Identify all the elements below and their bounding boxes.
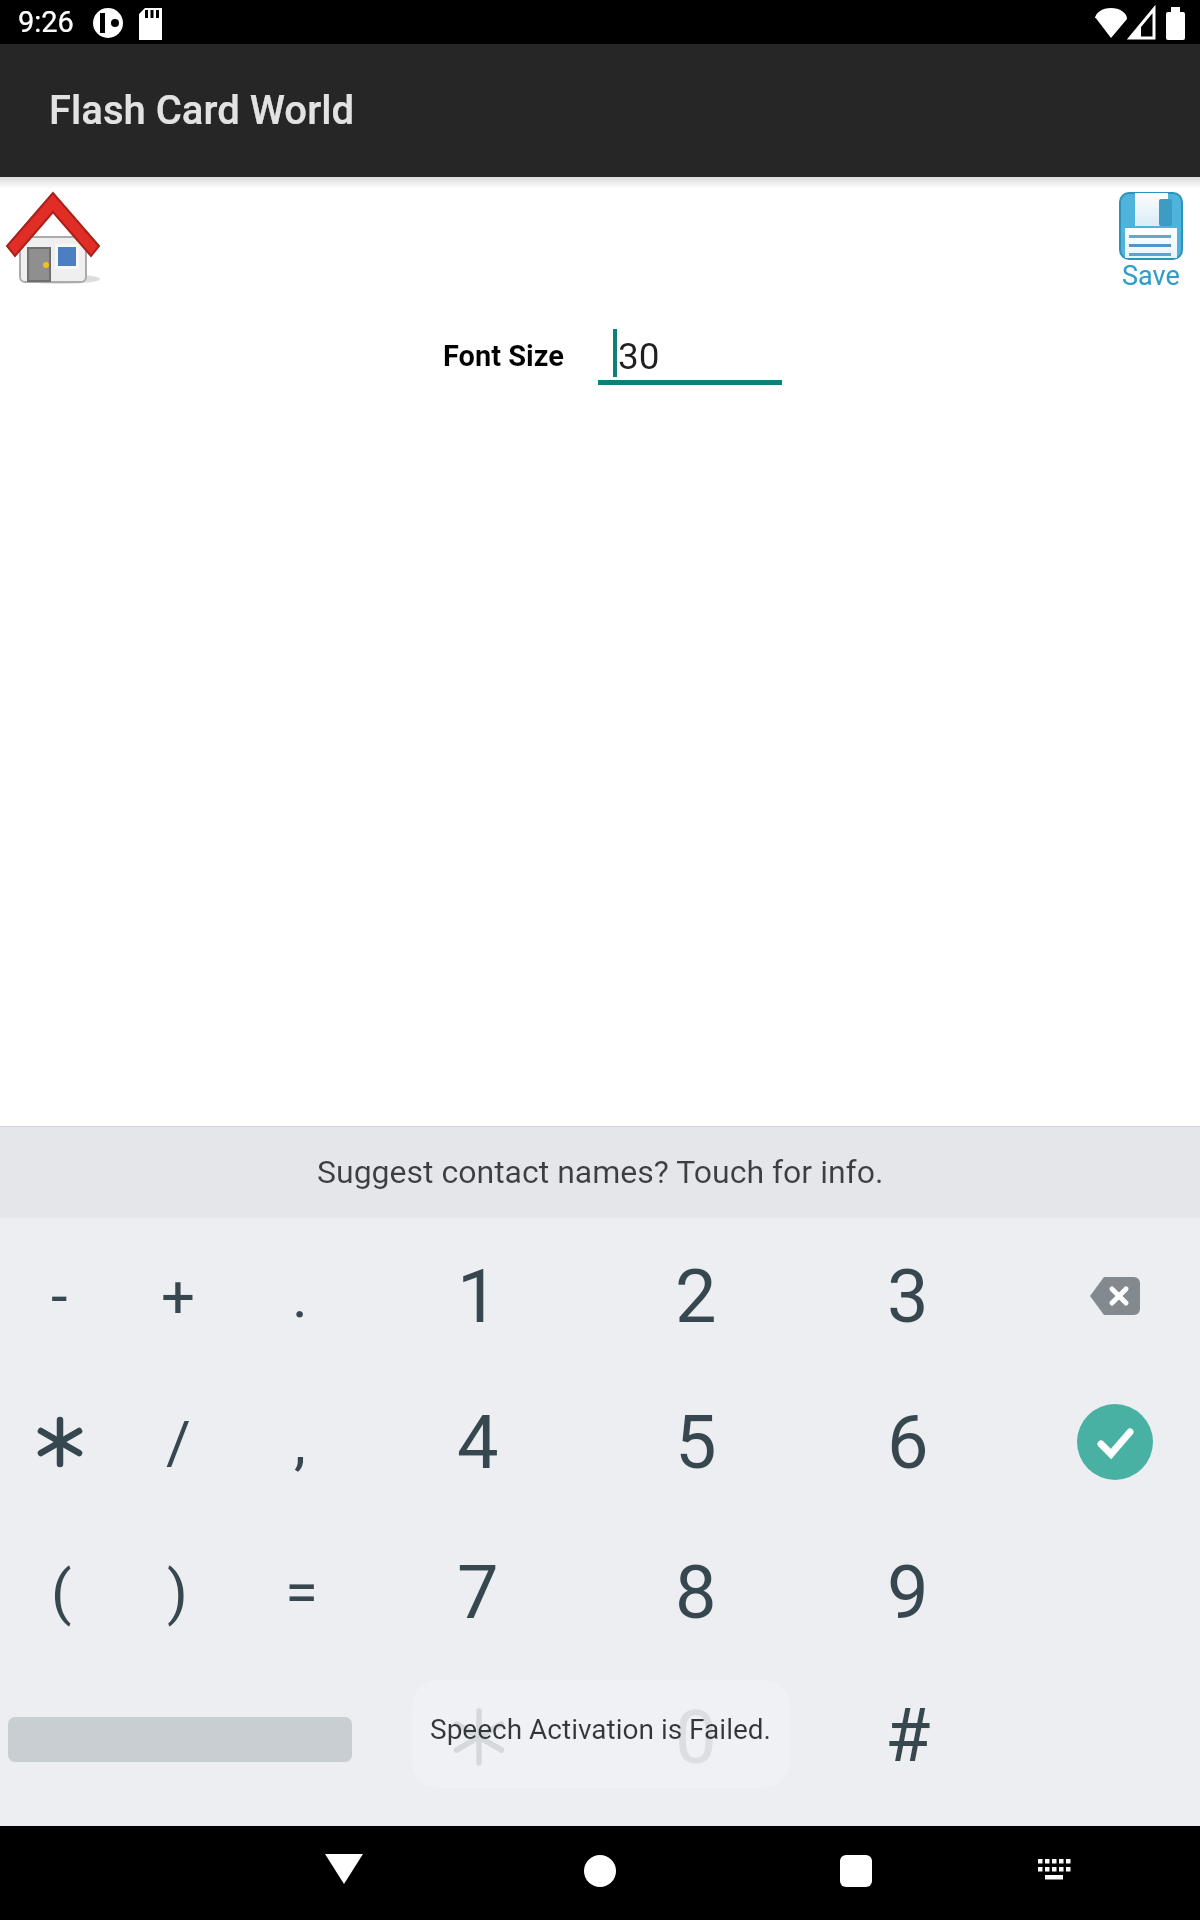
button[interactable] [1045, 1369, 1185, 1515]
button[interactable]: ( [0, 1519, 131, 1665]
button[interactable]: 4 [408, 1369, 548, 1515]
staticText: Suggest contact names? Touch for info. [317, 1153, 884, 1191]
button[interactable]: 5 [626, 1369, 766, 1515]
button[interactable]: 0 [626, 1664, 766, 1810]
staticText: 4 [457, 1399, 499, 1486]
staticText: Save [1122, 260, 1180, 292]
button[interactable]: . [230, 1223, 370, 1369]
button[interactable] [560, 1831, 640, 1915]
staticText: 0 [675, 1694, 717, 1781]
button[interactable]: , [230, 1369, 370, 1515]
staticText: 7 [457, 1549, 499, 1636]
staticText: + [161, 1261, 196, 1331]
staticText: 9:26 [18, 5, 74, 39]
button[interactable]: # [838, 1662, 978, 1808]
staticText: 30 [618, 335, 660, 378]
staticText: 9 [887, 1549, 929, 1636]
button[interactable]: 9 [838, 1519, 978, 1665]
button[interactable] [304, 1831, 384, 1915]
staticText: 2 [675, 1253, 717, 1340]
button[interactable]: Suggest contact names? Touch for info. [0, 1126, 1200, 1218]
staticText: = [285, 1557, 318, 1627]
staticText: 1 [457, 1253, 499, 1340]
button[interactable]: 8 [626, 1519, 766, 1665]
button[interactable] [0, 1369, 130, 1515]
button[interactable]: = [231, 1519, 371, 1665]
button[interactable] [8, 192, 100, 284]
button[interactable]: 2 [626, 1223, 766, 1369]
staticText: 8 [675, 1549, 717, 1636]
staticText: 3 [887, 1253, 929, 1340]
button[interactable]: + [108, 1223, 248, 1369]
button[interactable]: 6 [838, 1369, 978, 1515]
button[interactable] [1045, 1223, 1185, 1369]
staticText: Flash Card World [49, 87, 355, 134]
button[interactable]: - [0, 1223, 129, 1369]
staticText: ) [167, 1557, 188, 1627]
button[interactable] [816, 1831, 896, 1915]
staticText: Speech Activation is Failed. [430, 1713, 771, 1746]
button[interactable] [409, 1664, 549, 1810]
button[interactable] [1015, 1831, 1095, 1915]
button[interactable]: 1 [408, 1223, 548, 1369]
button[interactable]: ) [107, 1519, 247, 1665]
button[interactable]: / [108, 1369, 248, 1515]
staticText: # [885, 1692, 931, 1779]
button[interactable]: 3 [838, 1223, 978, 1369]
staticText: Font Size [443, 339, 564, 373]
staticText: - [51, 1261, 68, 1331]
staticText: , [294, 1407, 306, 1477]
button[interactable] [598, 317, 782, 387]
button[interactable]: Save [1118, 192, 1184, 292]
staticText: 6 [887, 1399, 929, 1486]
staticText: 5 [675, 1399, 717, 1486]
staticText: ( [51, 1557, 72, 1627]
staticText: / [166, 1407, 191, 1477]
staticText: . [292, 1261, 308, 1331]
button[interactable]: 7 [408, 1519, 548, 1665]
